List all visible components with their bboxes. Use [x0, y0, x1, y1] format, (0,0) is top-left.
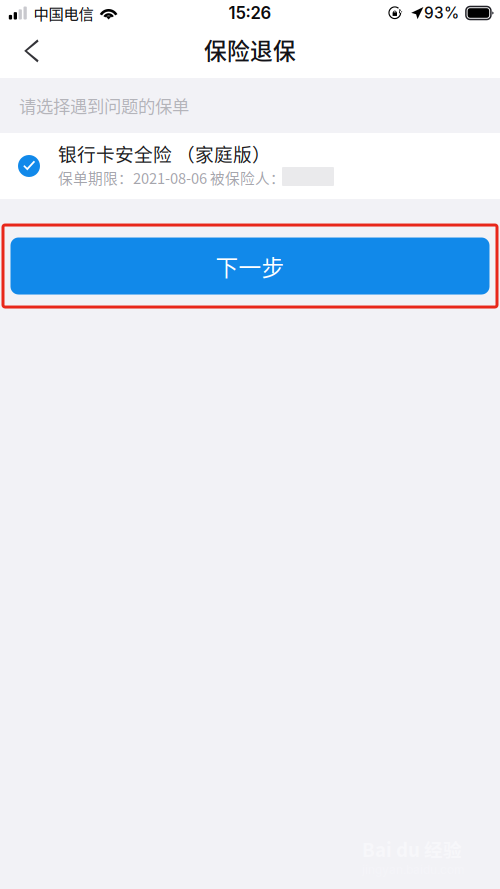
- staticText: 中国电信: [34, 2, 94, 24]
- button[interactable]: 银行卡安全险 （家庭版）: [0, 133, 500, 199]
- staticText: 请选择遇到问题的保单: [19, 93, 189, 118]
- staticText: 银行卡安全险 （家庭版）: [58, 140, 271, 167]
- button[interactable]: 下一步: [10, 237, 489, 294]
- staticText: 保单期限：2021-08-06 被保险人：: [58, 167, 285, 188]
- staticText: 15:26: [228, 3, 271, 23]
- staticText: 下一步: [215, 250, 284, 282]
- staticText: 93%: [424, 4, 459, 22]
- button[interactable]: Back: [0, 30, 56, 78]
- staticText: 保险退保: [204, 33, 296, 66]
